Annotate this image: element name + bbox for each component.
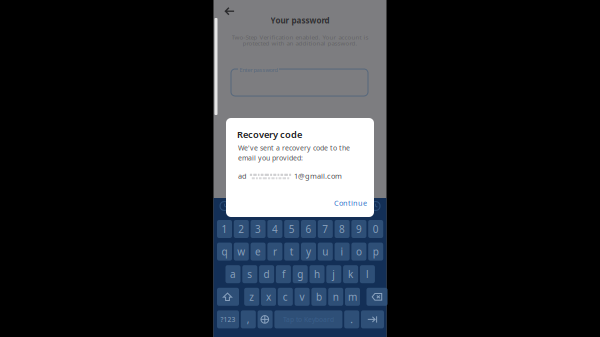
staticText: We've sent a recovery code to the	[238, 143, 350, 152]
staticText: 9	[356, 222, 362, 236]
staticText: i	[341, 245, 344, 258]
button[interactable]: b	[311, 288, 326, 306]
staticText: 0	[373, 222, 379, 236]
button[interactable]: l	[360, 265, 375, 283]
button[interactable]: 9	[351, 220, 366, 238]
button[interactable]: 2	[234, 220, 249, 238]
button[interactable]: t	[284, 243, 299, 261]
staticText: f	[282, 267, 285, 281]
button[interactable]: Next	[361, 310, 384, 328]
button[interactable]: Back	[219, 2, 239, 20]
button[interactable]: r	[267, 243, 282, 261]
button[interactable]: Continue	[329, 194, 372, 212]
staticText: 1@gmail.com	[294, 171, 342, 181]
button[interactable]: o	[351, 243, 366, 261]
staticText: 4	[272, 222, 278, 236]
staticText: email you provided:	[238, 153, 303, 162]
button[interactable]: u	[318, 243, 333, 261]
button[interactable]: i	[335, 243, 350, 261]
button[interactable]: f	[276, 265, 291, 283]
button[interactable]: Clipboard	[217, 199, 231, 213]
button[interactable]: v	[295, 288, 310, 306]
button[interactable]: c	[278, 288, 293, 306]
staticText: 7	[322, 222, 328, 236]
button[interactable]: m	[345, 288, 360, 306]
button[interactable]: 7	[318, 220, 333, 238]
staticText: Tap to Keyboard	[283, 315, 334, 324]
staticText: o	[356, 245, 362, 258]
staticText: b	[316, 290, 322, 304]
staticText: x	[266, 290, 271, 304]
staticText: s	[247, 267, 252, 281]
button[interactable]: ?123	[217, 310, 239, 328]
button[interactable]: 5	[284, 220, 299, 238]
staticText: w	[237, 245, 245, 258]
button[interactable]: p	[368, 243, 383, 261]
staticText: ,	[247, 313, 250, 326]
staticText: q	[221, 245, 227, 258]
staticText: ad	[238, 171, 247, 181]
staticText: Recovery code	[237, 128, 302, 141]
button[interactable]: n	[328, 288, 343, 306]
button[interactable]: 6	[301, 220, 316, 238]
staticText: h	[314, 267, 320, 281]
staticText: l	[366, 267, 369, 281]
button[interactable]: e	[251, 243, 266, 261]
staticText: .	[350, 313, 353, 326]
staticText: ?123	[220, 315, 235, 324]
staticText: 6	[305, 222, 311, 236]
button[interactable]: y	[301, 243, 316, 261]
staticText: n	[333, 290, 339, 304]
staticText: p	[373, 245, 379, 258]
staticText: y	[306, 245, 311, 258]
button[interactable]: 4	[267, 220, 282, 238]
button[interactable]: 3	[251, 220, 266, 238]
button[interactable]: 1	[217, 220, 232, 238]
staticText: Your password	[270, 15, 329, 26]
staticText: protected with an additional password.	[242, 39, 357, 47]
button[interactable]: d	[259, 265, 274, 283]
staticText: u	[322, 245, 328, 258]
staticText: 5	[289, 222, 295, 236]
button[interactable]: Settings	[368, 199, 382, 213]
button[interactable]: x	[261, 288, 276, 306]
staticText: t	[290, 245, 294, 258]
button[interactable]: h	[309, 265, 324, 283]
staticText: a	[230, 267, 236, 281]
staticText: g	[297, 267, 303, 281]
button[interactable]: 0	[368, 220, 383, 238]
button[interactable]: Switch language	[258, 310, 273, 328]
button[interactable]: j	[326, 265, 341, 283]
staticText: k	[348, 267, 353, 281]
staticText: r	[273, 245, 277, 258]
staticText: Enter password	[239, 66, 277, 74]
button[interactable]: w	[234, 243, 249, 261]
staticText: c	[283, 290, 288, 304]
button[interactable]: ,	[241, 310, 256, 328]
staticText: 1	[221, 222, 227, 236]
button[interactable]: s	[242, 265, 257, 283]
staticText: z	[249, 290, 254, 304]
button[interactable]: Backspace	[366, 288, 387, 306]
button[interactable]: k	[343, 265, 358, 283]
staticText: e	[255, 245, 261, 258]
button[interactable]: 8	[335, 220, 350, 238]
staticText: d	[264, 267, 270, 281]
button[interactable]: .	[344, 310, 359, 328]
staticText: j	[332, 267, 335, 281]
staticText: m	[348, 290, 357, 304]
staticText: 8	[339, 222, 345, 236]
staticText: Two-Step Verification enabled. Your acco…	[231, 33, 368, 41]
staticText: 3	[255, 222, 261, 236]
button[interactable]: Space	[274, 310, 342, 328]
staticText: 2	[238, 222, 244, 236]
staticText: v	[300, 290, 305, 304]
button[interactable]: g	[293, 265, 308, 283]
button[interactable]: q	[217, 243, 232, 261]
button[interactable]: Shift	[217, 288, 239, 306]
button[interactable]: a	[225, 265, 240, 283]
button[interactable]: z	[244, 288, 259, 306]
staticText: Continue	[334, 198, 367, 208]
